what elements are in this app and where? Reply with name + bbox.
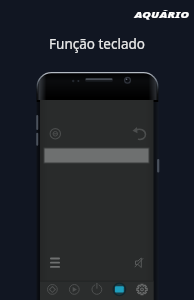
button[interactable]: Aquario logo [0,0,194,26]
other: Aquario logo [136,7,188,22]
staticText: Função teclado [49,35,145,53]
staticText: AQUÁRIO [134,8,189,21]
